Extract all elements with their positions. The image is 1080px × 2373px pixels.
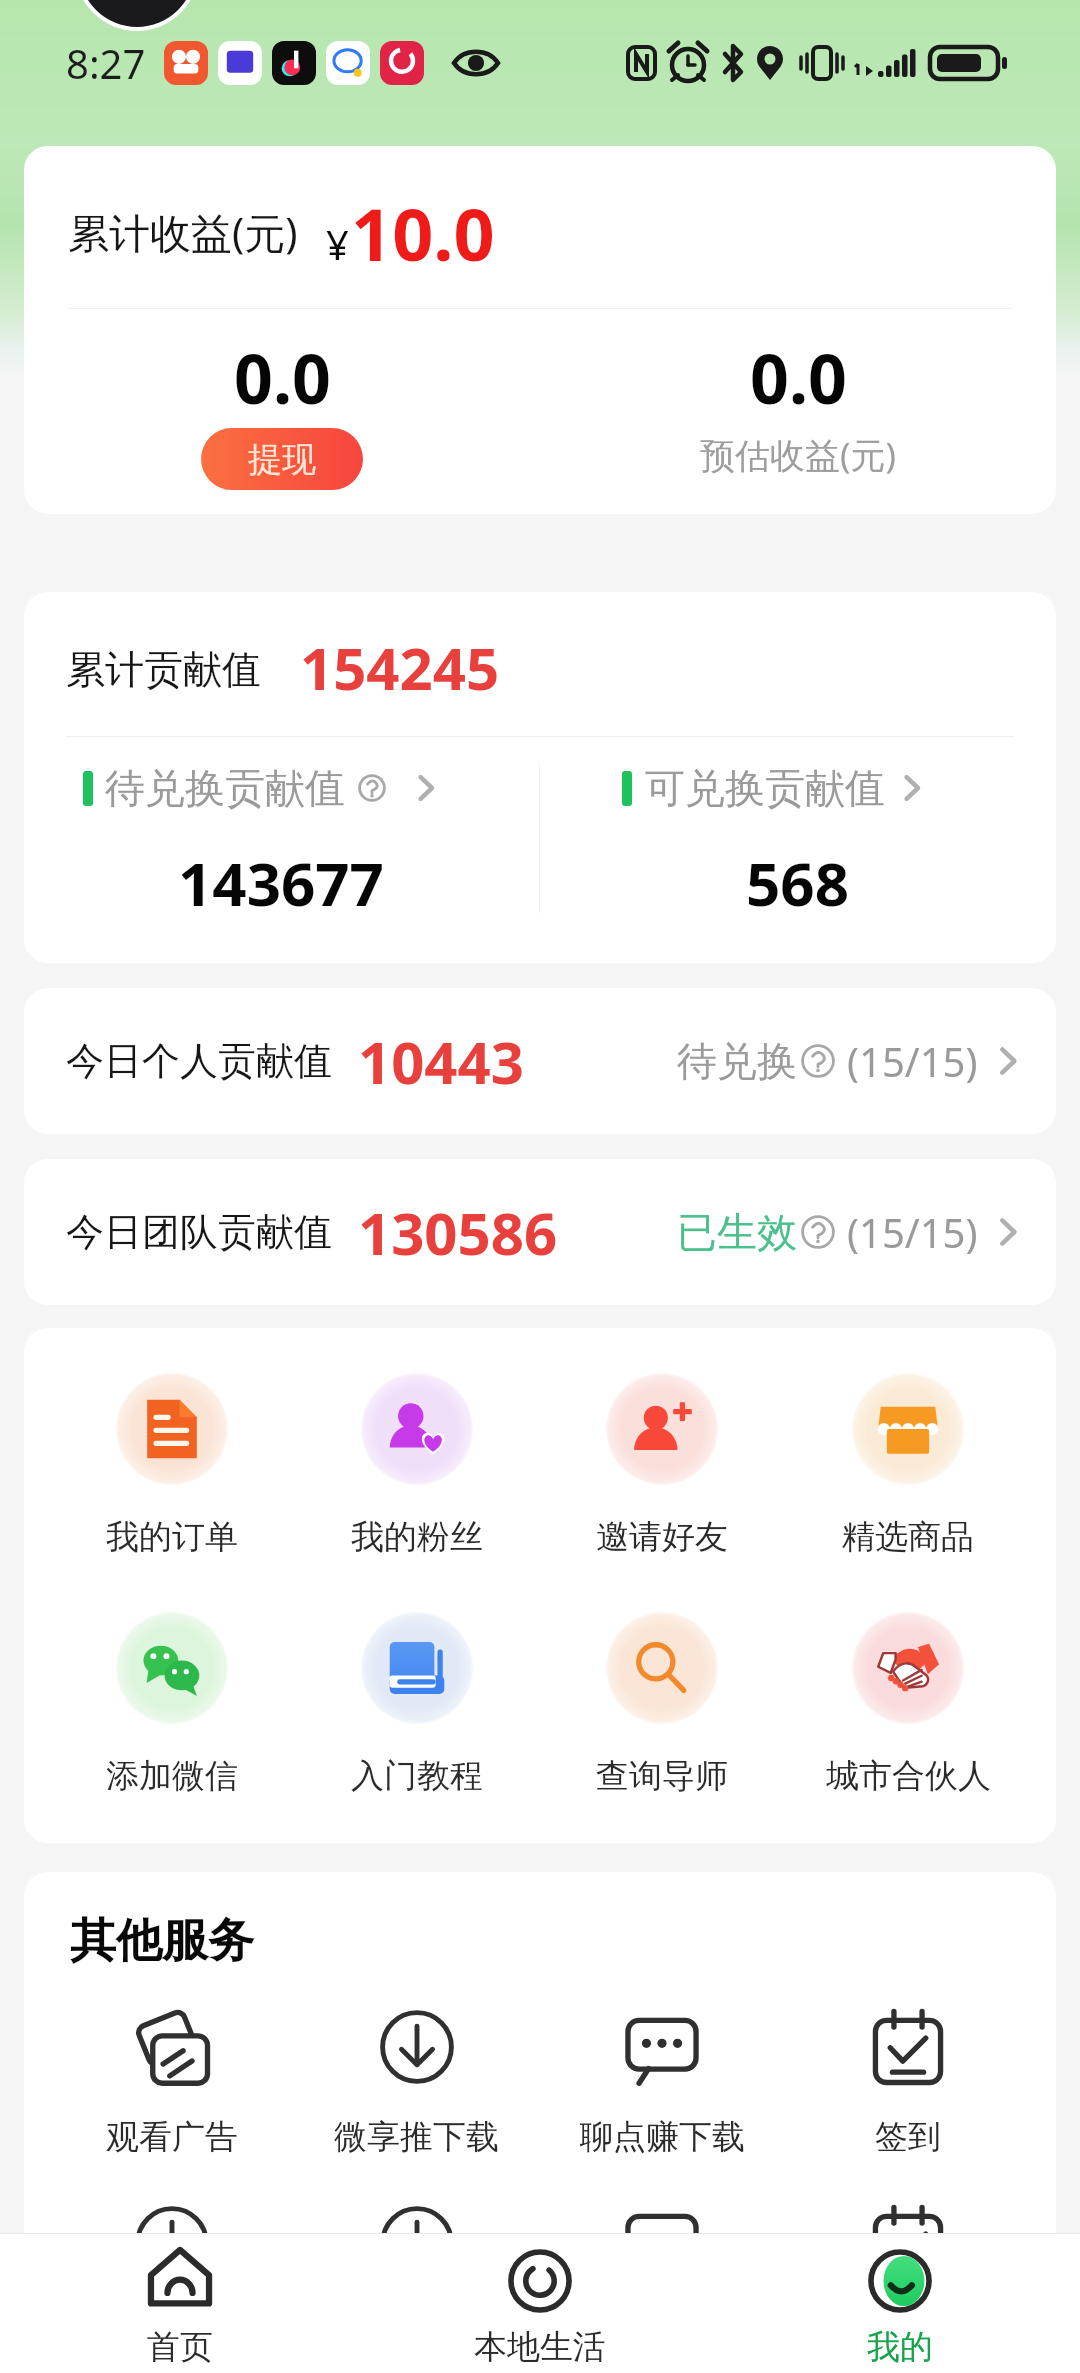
button[interactable]: 可兑换贡献值 <box>540 763 1056 924</box>
staticText: (15/15) <box>847 1034 978 1088</box>
staticText: 我的 <box>867 2326 933 2368</box>
staticText: (15/15) <box>847 1205 978 1259</box>
button[interactable]: 微享推下载 <box>294 2010 539 2158</box>
button[interactable]: 设置 <box>785 2206 1031 2354</box>
staticText: 设置 <box>875 2312 941 2354</box>
staticText: 已生效 <box>677 1207 797 1257</box>
staticText: 8:27 <box>66 36 146 90</box>
button[interactable]: 我的团队 <box>539 2206 785 2354</box>
staticText: 首页 <box>147 2326 213 2368</box>
button[interactable]: 查询导师 <box>539 1612 785 1797</box>
button[interactable]: 入门教程 <box>294 1612 539 1797</box>
staticText: ¥ <box>326 217 349 271</box>
staticText: 10.0 <box>351 184 495 282</box>
staticText: 我的粉丝 <box>351 1516 483 1558</box>
staticText: 待兑换 <box>677 1036 797 1086</box>
staticText: 累计贡献值 <box>66 645 261 694</box>
button[interactable]: 聊点赚下载 <box>539 2010 785 2158</box>
staticText: 我的团队 <box>596 2312 728 2354</box>
staticText: 130586 <box>358 1193 558 1272</box>
staticText: 提现 <box>248 438 316 481</box>
button[interactable]: 邀请好友 <box>539 1373 785 1558</box>
button[interactable]: 邀请记录 <box>49 2206 294 2354</box>
button[interactable]: 我的粉丝 <box>294 1373 539 1558</box>
button[interactable]: 我的订单 <box>49 1373 294 1558</box>
staticText: 预估收益(元) <box>700 431 897 479</box>
staticText: 0.0 <box>234 331 331 424</box>
staticText: 今日团队贡献值 <box>66 1208 332 1256</box>
button[interactable]: 添加微信 <box>49 1612 294 1797</box>
staticText: 我的订单 <box>106 1516 238 1558</box>
button[interactable]: 签到 <box>785 2010 1031 2158</box>
button[interactable]: 本地生活 <box>360 2234 720 2373</box>
staticText: 143677 <box>178 842 384 924</box>
staticText: 10443 <box>358 1022 524 1101</box>
button[interactable]: 观看广告 <box>49 2010 294 2158</box>
button[interactable]: 待兑换贡献值 <box>24 763 539 924</box>
button[interactable]: 我的 <box>720 2234 1080 2373</box>
button[interactable]: 首页 <box>0 2234 360 2373</box>
button[interactable]: 今日个人贡献值 <box>24 988 1056 1134</box>
staticText: 0.0 <box>750 331 847 424</box>
staticText: 观看广告 <box>106 2116 238 2158</box>
staticText: 154245 <box>300 628 500 707</box>
staticText: 今日个人贡献值 <box>66 1037 332 1085</box>
staticText: 本地生活 <box>474 2326 606 2368</box>
staticText: 查询导师 <box>596 1755 728 1797</box>
staticText: 待兑换贡献值 <box>105 763 345 813</box>
button[interactable]: 提现 <box>201 428 363 490</box>
staticText: 邀请好友 <box>596 1516 728 1558</box>
staticText: 入门教程 <box>351 1755 483 1797</box>
button[interactable]: 城市合伙人 <box>785 1612 1031 1797</box>
staticText: 添加微信 <box>106 1755 238 1797</box>
button[interactable]: 我的收益 <box>294 2206 539 2354</box>
staticText: 邀请记录 <box>106 2312 238 2354</box>
staticText: 累计收益(元) <box>68 204 298 260</box>
button[interactable]: 今日团队贡献值 <box>24 1159 1056 1305</box>
staticText: 微享推下载 <box>334 2116 499 2158</box>
staticText: 精选商品 <box>842 1516 974 1558</box>
staticText: 其他服务 <box>70 1912 254 1970</box>
staticText: 聊点赚下载 <box>580 2116 745 2158</box>
staticText: 568 <box>746 842 849 924</box>
staticText: 我的收益 <box>351 2312 483 2354</box>
staticText: 城市合伙人 <box>826 1755 991 1797</box>
staticText: 可兑换贡献值 <box>645 763 885 813</box>
button[interactable]: 精选商品 <box>785 1373 1031 1558</box>
staticText: 签到 <box>875 2116 941 2158</box>
